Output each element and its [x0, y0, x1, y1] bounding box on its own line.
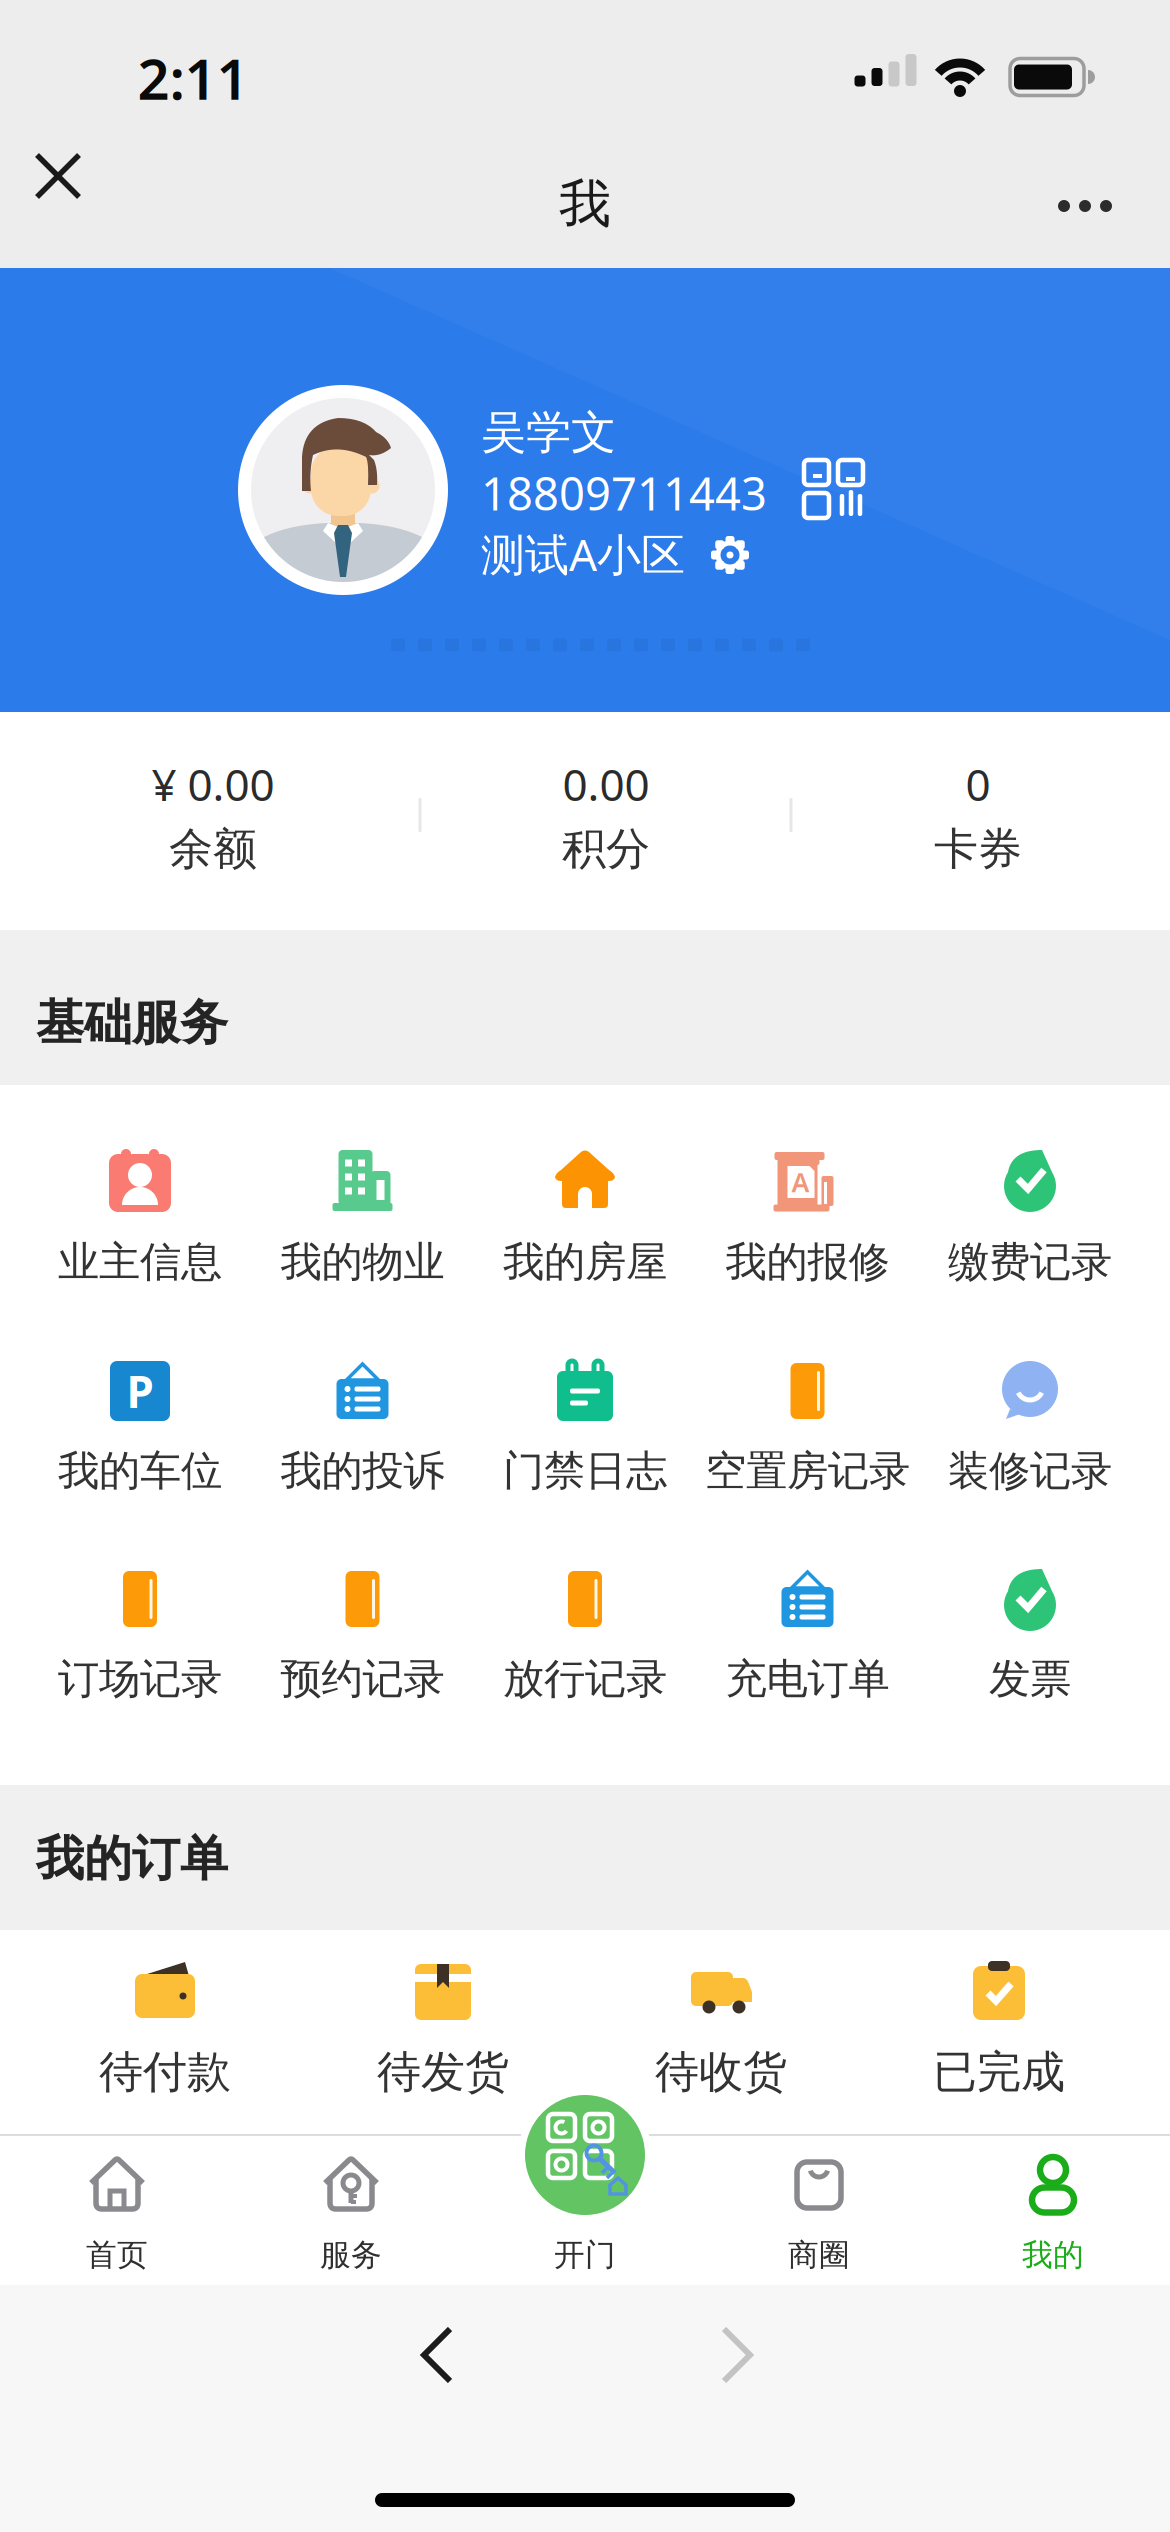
staticText: ¥ 0.00 [151, 755, 274, 813]
button[interactable]: 门禁日志 [474, 1353, 696, 1509]
button[interactable]: 待付款 [45, 1954, 285, 2110]
staticText: 放行记录 [503, 1654, 667, 1704]
staticText: 我的订单 [36, 1829, 228, 1888]
button[interactable]: QR code [804, 460, 864, 518]
button[interactable]: ¥ 0.00 [103, 712, 323, 930]
staticText: 首页 [86, 2236, 148, 2274]
staticText: 待发货 [377, 2045, 509, 2099]
staticText: A [791, 1164, 809, 1200]
staticText: 基础服务 [36, 993, 228, 1052]
staticText: 卡券 [934, 822, 1022, 876]
button[interactable]: 开门 [518, 2088, 652, 2222]
staticText: 开门 [554, 2236, 616, 2274]
button[interactable]: 充电订单 [696, 1561, 918, 1717]
staticText: 服务 [320, 2236, 382, 2274]
staticText: P [126, 1362, 153, 1420]
button[interactable]: 订场记录 [29, 1561, 251, 1717]
staticText: 商圈 [788, 2236, 850, 2274]
staticText: 预约记录 [280, 1654, 444, 1704]
button[interactable]: 我的 [978, 2134, 1128, 2285]
button[interactable]: Settings [710, 535, 750, 575]
staticText: 待收货 [655, 2045, 787, 2099]
staticText: 我的车位 [58, 1446, 222, 1496]
staticText: 装修记录 [948, 1446, 1112, 1496]
button[interactable]: 0 [868, 712, 1088, 930]
button[interactable]: 预约记录 [251, 1561, 473, 1717]
button[interactable]: 我的物业 [251, 1142, 473, 1300]
staticText: 业主信息 [58, 1237, 222, 1287]
button[interactable]: 开门 [510, 2225, 660, 2285]
staticText: 0 [965, 755, 990, 813]
staticText: 发票 [989, 1654, 1071, 1704]
button[interactable]: 服务 [276, 2134, 426, 2285]
staticText: 吴学文 [481, 405, 616, 460]
button[interactable]: 我的投诉 [251, 1353, 473, 1509]
button[interactable]: 待发货 [323, 1954, 563, 2110]
staticText: 余额 [169, 822, 257, 876]
button[interactable]: A [696, 1142, 918, 1300]
button[interactable]: Back [420, 2329, 454, 2381]
staticText: 积分 [562, 822, 650, 876]
staticText: 门禁日志 [503, 1446, 667, 1496]
button[interactable]: 首页 [42, 2134, 192, 2285]
staticText: 我的投诉 [280, 1446, 444, 1496]
button[interactable]: 我的房屋 [474, 1142, 696, 1300]
button[interactable]: 放行记录 [474, 1561, 696, 1717]
staticText: 2:11 [137, 41, 248, 115]
button[interactable]: Close [58, 176, 118, 236]
button[interactable]: 待收货 [601, 1954, 841, 2110]
staticText: 18809711443 [481, 463, 767, 523]
staticText: 充电订单 [725, 1654, 889, 1704]
button[interactable]: 商圈 [744, 2134, 894, 2285]
button[interactable]: 空置房记录 [696, 1353, 918, 1509]
staticText: 我的 [1022, 2236, 1084, 2274]
button[interactable]: More [1037, 176, 1133, 236]
staticText: 我的报修 [725, 1237, 889, 1287]
button[interactable]: Forward [720, 2329, 754, 2381]
staticText: 已完成 [933, 2045, 1065, 2099]
staticText: 待付款 [99, 2045, 231, 2099]
button[interactable]: 缴费记录 [919, 1142, 1141, 1300]
button[interactable]: 发票 [919, 1561, 1141, 1717]
button[interactable]: 业主信息 [29, 1142, 251, 1300]
staticText: 0.00 [562, 755, 649, 813]
button[interactable]: 装修记录 [919, 1353, 1141, 1509]
staticText: 订场记录 [58, 1654, 222, 1704]
staticText: 测试A小区 [481, 525, 685, 583]
staticText: 空置房记录 [705, 1446, 910, 1496]
button[interactable]: 已完成 [879, 1954, 1119, 2110]
staticText: 缴费记录 [948, 1237, 1112, 1287]
staticText: 我 [559, 172, 611, 236]
button[interactable]: 0.00 [496, 712, 716, 930]
staticText: 我的物业 [280, 1237, 444, 1287]
staticText: 我的房屋 [503, 1237, 667, 1287]
button[interactable]: P [29, 1353, 251, 1509]
